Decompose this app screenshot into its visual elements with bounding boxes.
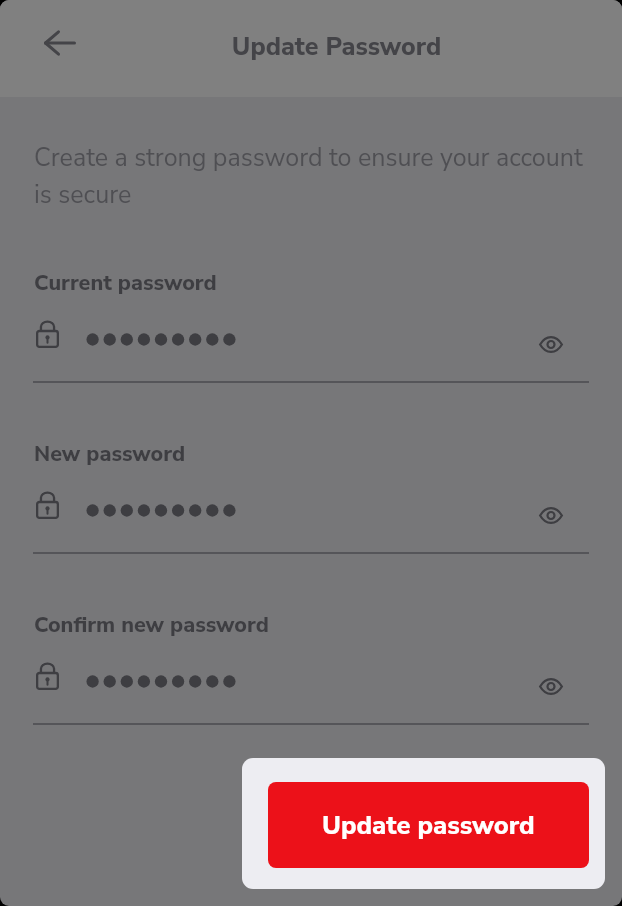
staticText: New password: [34, 439, 186, 468]
button[interactable]: Show password: [529, 493, 573, 537]
button[interactable]: Show password: [529, 664, 573, 708]
staticText: Update Password: [51, 30, 622, 64]
staticText: Confirm new password: [34, 610, 269, 639]
button[interactable]: Update password: [268, 782, 589, 868]
staticText: Create a strong password to ensure your …: [34, 139, 590, 213]
staticText: Update password: [322, 808, 535, 843]
button[interactable]: Show password: [529, 322, 573, 366]
button[interactable]: Back: [37, 19, 83, 67]
staticText: Current password: [34, 268, 217, 297]
